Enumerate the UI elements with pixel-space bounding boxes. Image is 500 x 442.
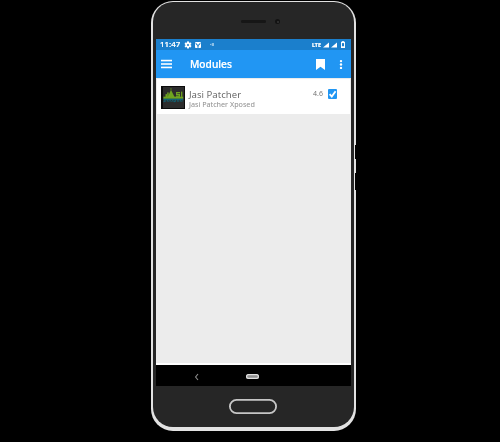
button[interactable]: Module enabled: [328, 89, 337, 99]
button[interactable]: Open navigation menu: [156, 54, 176, 74]
staticText: 11:47: [160, 39, 181, 50]
staticText: LTE: [312, 41, 321, 48]
button[interactable]: Home: [246, 374, 259, 379]
staticText: 4.6: [313, 89, 323, 99]
staticText: Jasi Patcher: [189, 88, 242, 101]
button[interactable]: More options: [331, 54, 351, 74]
button[interactable]: Jasi Patcher: [157, 79, 350, 114]
staticText: Modules: [190, 57, 232, 71]
button[interactable]: Bookmarks: [310, 54, 330, 74]
staticText: Jasi Patcher Xposed: [189, 99, 255, 109]
button[interactable]: Back: [189, 370, 203, 384]
